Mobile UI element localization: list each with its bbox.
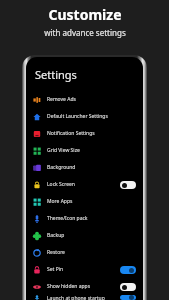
button[interactable]: Theme/Icon pack — [26, 210, 143, 227]
staticText: Background — [47, 164, 136, 171]
button[interactable]: Show hidden apps — [26, 278, 143, 295]
button[interactable]: Lock Screen toggle — [120, 181, 136, 189]
staticText: Theme/Icon pack — [47, 215, 136, 222]
staticText: Default Launcher Settings — [47, 113, 136, 120]
staticText: Customize — [48, 5, 122, 24]
button[interactable]: Background — [26, 159, 143, 176]
staticText: Launch at phone startup — [47, 295, 120, 300]
button[interactable]: Backup — [26, 227, 143, 244]
staticText: Settings — [35, 67, 77, 82]
staticText: Set Pin — [47, 266, 120, 273]
button[interactable]: Launch at phone startup — [26, 295, 143, 300]
button[interactable]: Launch at phone startup toggle — [120, 295, 136, 300]
staticText: Lock Screen — [47, 181, 120, 188]
button[interactable]: Notification Settings — [26, 125, 143, 142]
button[interactable]: More Apps — [26, 193, 143, 210]
button[interactable]: Show hidden apps toggle — [120, 283, 136, 291]
staticText: Backup — [47, 232, 136, 239]
button[interactable]: Grid View Size — [26, 142, 143, 159]
button[interactable]: Lock Screen — [26, 176, 143, 193]
staticText: Restore — [47, 249, 136, 256]
staticText: Remove Ads — [47, 96, 136, 103]
button[interactable]: Remove Ads — [26, 91, 143, 108]
button[interactable]: Default Launcher Settings — [26, 108, 143, 125]
staticText: Grid View Size — [47, 147, 136, 154]
staticText: Notification Settings — [47, 130, 136, 137]
button[interactable]: Set Pin toggle — [120, 266, 136, 274]
staticText: More Apps — [47, 198, 136, 205]
staticText: with advance settings — [44, 27, 126, 38]
button[interactable]: Restore — [26, 244, 143, 261]
staticText: Show hidden apps — [47, 283, 120, 290]
button[interactable]: Set Pin — [26, 261, 143, 278]
